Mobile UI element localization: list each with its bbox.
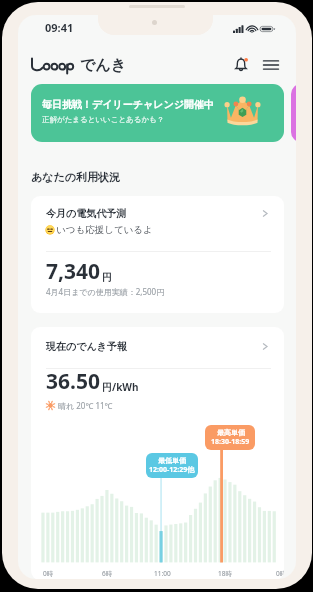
- staticText: 晴れ 20℃ 11℃: [58, 400, 113, 411]
- button[interactable]: Menu: [258, 52, 283, 77]
- staticText: 18時: [218, 569, 232, 578]
- button[interactable]: 現在のでんき予報: [31, 327, 284, 579]
- staticText: でんき: [80, 56, 127, 75]
- staticText: 6時: [102, 569, 113, 578]
- staticText: あなたの利用状況: [31, 170, 121, 184]
- staticText: 正解がたまるといいことあるかも？: [42, 115, 165, 124]
- staticText: 0時: [43, 569, 54, 578]
- button[interactable]: Notifications: [228, 52, 253, 77]
- button[interactable]: 今月の電気代予測: [31, 196, 284, 313]
- staticText: 11:00: [154, 569, 171, 578]
- staticText: 最低単価: [158, 456, 186, 465]
- staticText: いつも応援しているよ: [56, 224, 153, 236]
- staticText: 毎日挑戦！デイリーチャレンジ開催中: [42, 98, 214, 111]
- staticText: 今月の電気代予測: [46, 207, 127, 220]
- staticText: 4月4日までの使用実績：2,500円: [46, 286, 165, 297]
- button[interactable]: Looop Denki home: [30, 56, 127, 75]
- staticText: 円: [102, 271, 112, 284]
- staticText: 36.50: [46, 367, 100, 396]
- staticText: 0時: [276, 569, 284, 578]
- staticText: 18:30-18:59: [211, 437, 250, 447]
- staticText: 7,340: [46, 257, 101, 286]
- staticText: 12:00-12:29他: [149, 465, 195, 475]
- staticText: 09:41: [45, 20, 74, 35]
- button[interactable]: [291, 84, 296, 142]
- staticText: 現在のでんき予報: [46, 340, 127, 353]
- staticText: 最高単価: [217, 428, 245, 437]
- staticText: 円/kWh: [102, 380, 139, 394]
- button[interactable]: 毎日挑戦！デイリーチャレンジ開催中: [31, 84, 284, 142]
